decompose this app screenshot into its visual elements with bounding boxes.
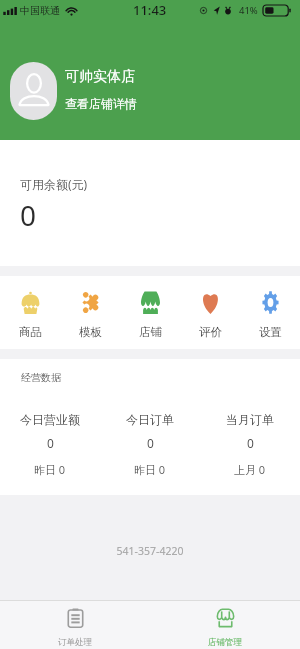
staticText: 0	[20, 196, 37, 234]
button[interactable]: 可用余额(元)	[20, 140, 300, 266]
staticText: 订单处理	[58, 637, 92, 648]
staticText: 11:43	[133, 1, 167, 19]
staticText: 中国联通	[20, 4, 60, 17]
staticText: 当月订单	[226, 412, 274, 427]
button[interactable]: 设置	[240, 276, 300, 349]
button[interactable]: 当月订单	[200, 412, 300, 477]
staticText: 设置	[259, 325, 282, 339]
button[interactable]: 订单处理	[0, 601, 150, 649]
button[interactable]: 今日订单	[100, 412, 200, 477]
staticText: 昨日 0	[134, 462, 166, 477]
staticText: 可帅实体店	[65, 68, 135, 86]
staticText: 0	[147, 435, 154, 451]
staticText: 店铺	[139, 325, 162, 339]
staticText: 541-357-4220	[0, 544, 300, 558]
staticText: 评价	[199, 325, 222, 339]
staticText: 今日营业额	[20, 412, 80, 427]
staticText: 今日订单	[126, 412, 174, 427]
staticText: 经营数据	[21, 371, 61, 384]
staticText: 模板	[79, 325, 102, 339]
staticText: 可用余额(元)	[20, 176, 88, 192]
staticText: 0	[47, 435, 54, 451]
button[interactable]: 今日营业额	[0, 412, 100, 477]
button[interactable]: 评价	[180, 276, 240, 349]
staticText: 商品	[19, 325, 42, 339]
staticText: 店铺管理	[208, 637, 242, 648]
button[interactable]: 商品	[0, 276, 60, 349]
button[interactable]: 模板	[60, 276, 120, 349]
button[interactable]: 店铺	[120, 276, 180, 349]
staticText: 上月 0	[234, 462, 266, 477]
staticText: 查看店铺详情	[65, 96, 137, 111]
button[interactable]: 可帅实体店	[10, 62, 300, 120]
staticText: 昨日 0	[34, 462, 66, 477]
staticText: 0	[247, 435, 254, 451]
button[interactable]: 店铺管理	[150, 601, 300, 649]
staticText: 41%	[239, 4, 258, 17]
